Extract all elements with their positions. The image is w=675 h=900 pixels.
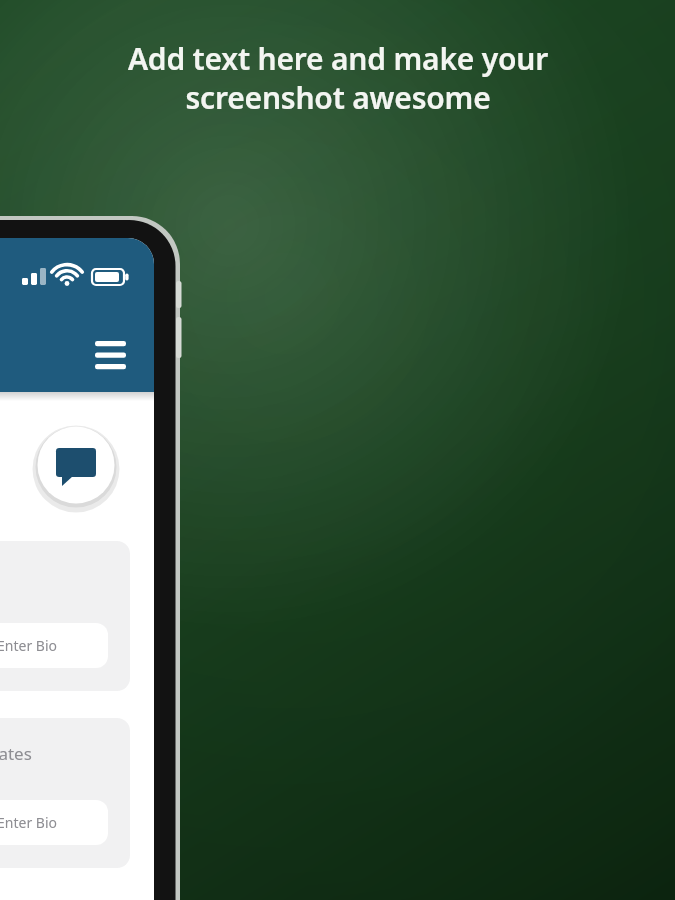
button[interactable]: Messages <box>37 426 115 504</box>
staticText: Delegates <box>0 742 32 765</box>
button[interactable]: Open navigation menu <box>88 332 134 378</box>
staticText: Enter Bio <box>0 813 57 832</box>
button[interactable]: Enter Bio <box>0 623 108 668</box>
staticText: Enter Bio <box>0 636 57 655</box>
button[interactable]: Enter Bio <box>0 800 108 845</box>
staticText: Add text here and make your screenshot a… <box>58 38 618 117</box>
